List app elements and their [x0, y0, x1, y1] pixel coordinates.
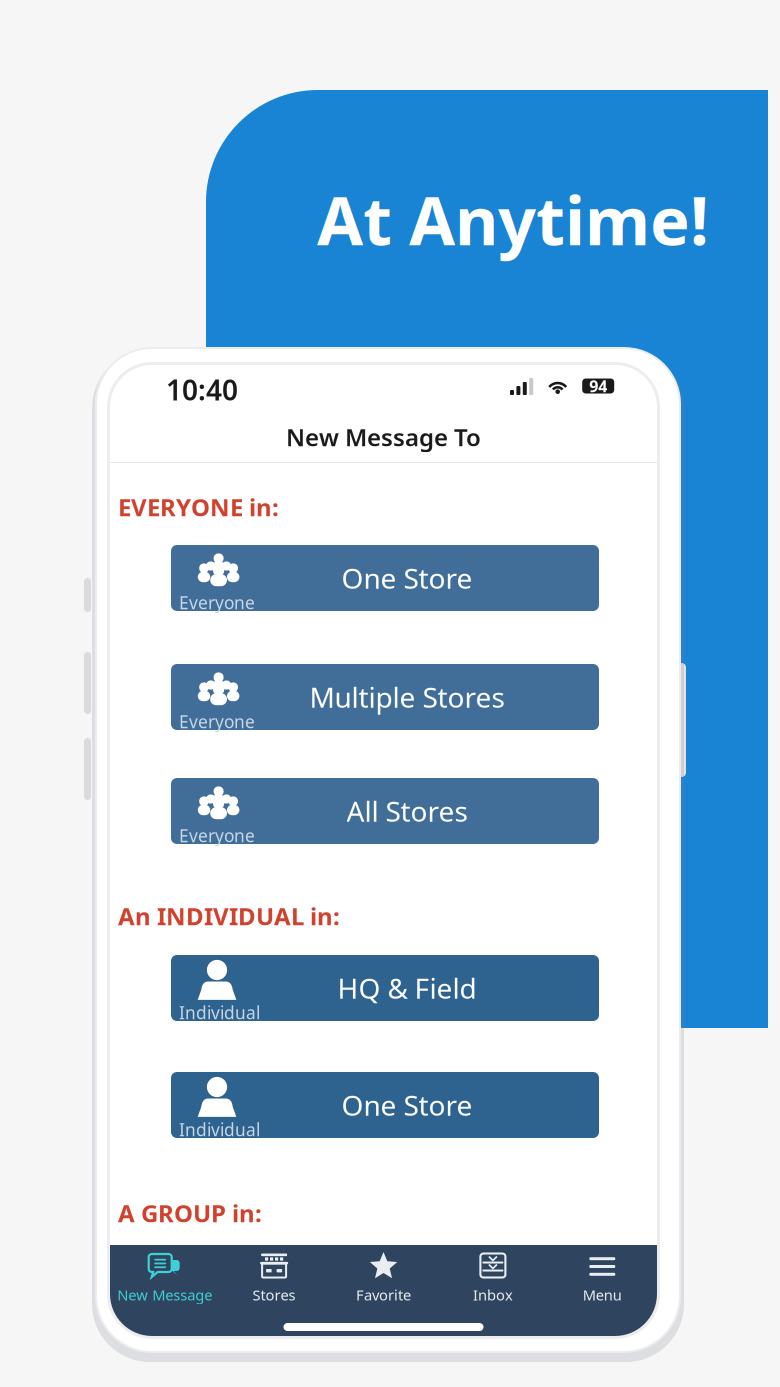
staticText: Individual	[179, 1001, 260, 1024]
button[interactable]: One Store	[171, 1072, 599, 1138]
button[interactable]: Menu	[548, 1251, 657, 1304]
staticText: All Stores	[346, 792, 467, 830]
staticText: 94	[589, 375, 607, 397]
button[interactable]: Favorite	[329, 1251, 438, 1304]
staticText: Individual	[179, 1118, 260, 1141]
staticText: A GROUP in:	[118, 1197, 262, 1229]
staticText: Everyone	[179, 591, 255, 614]
staticText: An INDIVIDUAL in:	[118, 900, 340, 932]
staticText: Stores	[253, 1285, 296, 1304]
staticText: Everyone	[179, 710, 255, 733]
button[interactable]: HQ & Field	[171, 955, 599, 1021]
staticText: Inbox	[473, 1285, 513, 1304]
staticText: Multiple Stores	[309, 678, 504, 716]
staticText: Favorite	[356, 1285, 411, 1304]
staticText: HQ & Field	[337, 969, 476, 1007]
button[interactable]: Inbox	[438, 1251, 548, 1304]
staticText: One Store	[341, 1086, 472, 1124]
button[interactable]: One Store	[171, 545, 599, 611]
staticText: New Message To	[286, 421, 481, 453]
staticText: Everyone	[179, 824, 255, 847]
staticText: 10:40	[166, 371, 238, 408]
button[interactable]: Stores	[219, 1251, 329, 1304]
button[interactable]: Multiple Stores	[171, 664, 599, 730]
staticText: New Message	[117, 1285, 212, 1304]
button[interactable]: All Stores	[171, 778, 599, 844]
button[interactable]: New Message	[110, 1251, 219, 1304]
staticText: EVERYONE in:	[118, 491, 279, 523]
staticText: Menu	[583, 1285, 622, 1304]
staticText: One Store	[341, 559, 472, 597]
staticText: At Anytime!	[317, 175, 709, 263]
